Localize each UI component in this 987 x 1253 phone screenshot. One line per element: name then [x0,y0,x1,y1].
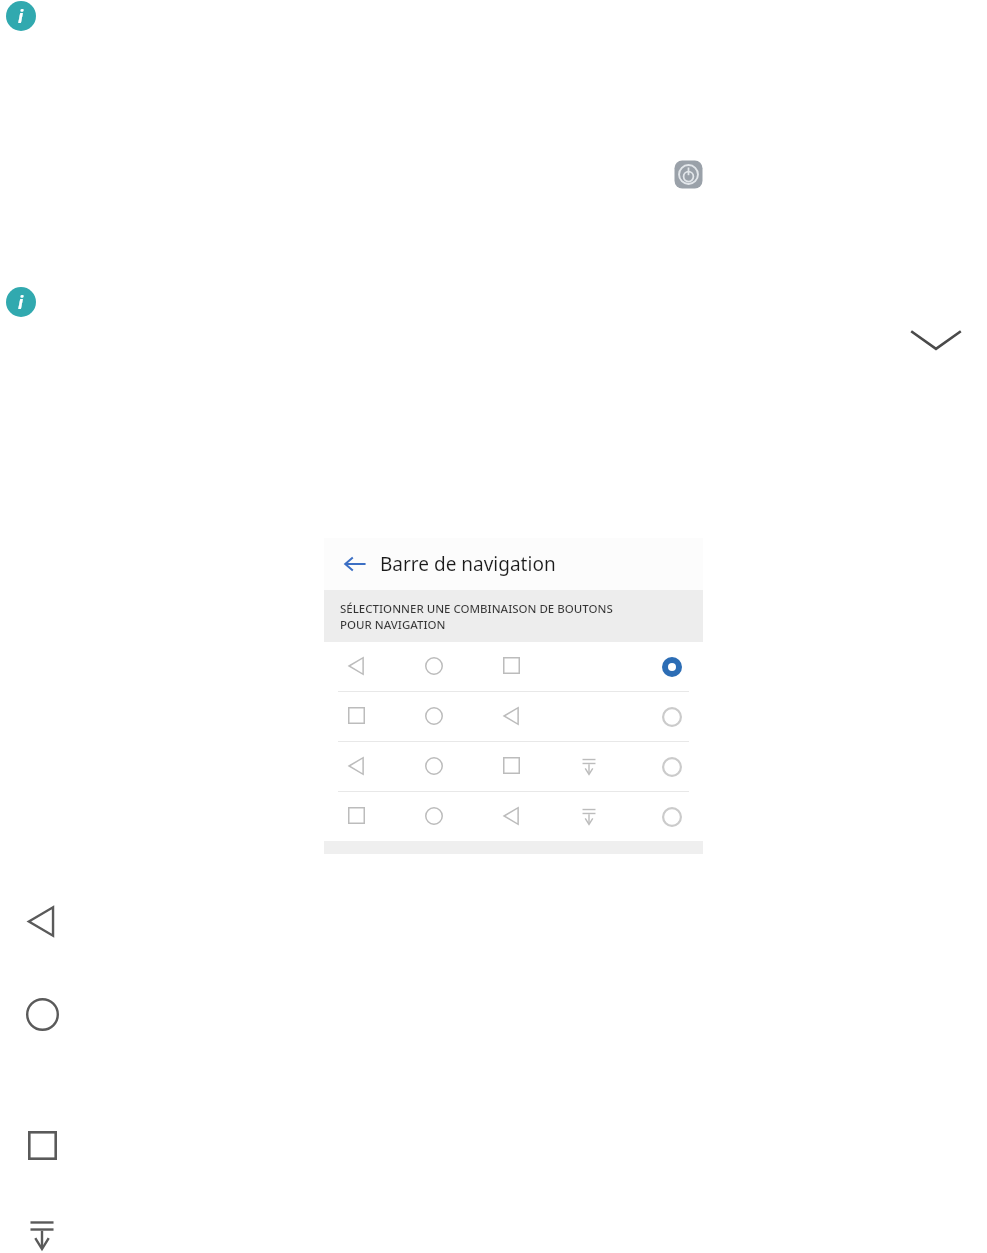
button[interactable]: Home key [24,996,60,1032]
button[interactable] [324,692,703,741]
button[interactable]: Back [336,545,374,583]
staticText: i [18,5,24,28]
button[interactable] [324,642,703,691]
button[interactable] [324,792,703,841]
button[interactable]: Expand [905,318,967,362]
staticText: SÉLECTIONNER UNE COMBINAISON DE BOUTONS … [340,601,613,632]
button[interactable] [661,756,683,778]
button[interactable] [661,706,683,728]
button[interactable] [324,742,703,791]
staticText: Barre de navigation [380,551,556,577]
button[interactable]: Back key [24,903,60,939]
staticText: i [18,291,24,314]
button[interactable] [661,656,683,678]
button[interactable]: Recents key [24,1127,60,1163]
button[interactable]: Navigation settings icon [671,157,706,192]
button[interactable]: Notification panel key [24,1216,60,1252]
button[interactable] [661,806,683,828]
